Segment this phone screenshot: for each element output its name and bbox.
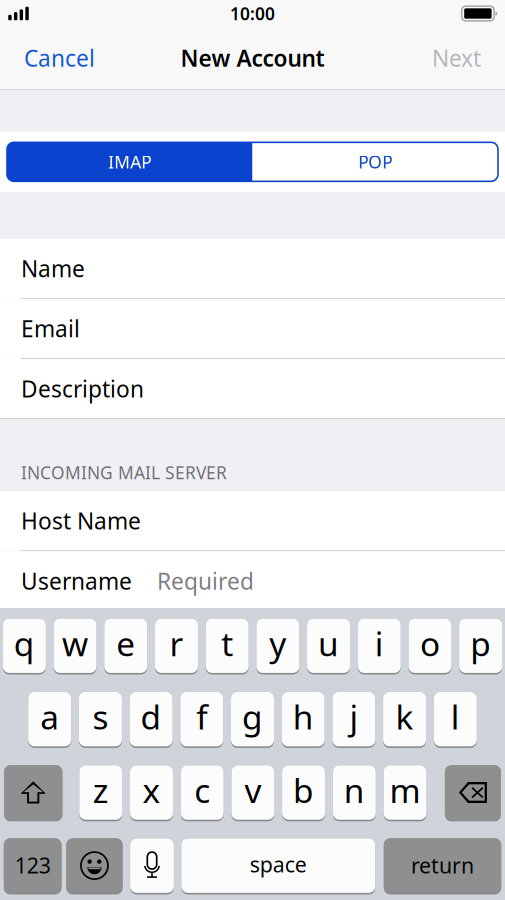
staticText: POP	[358, 150, 392, 173]
staticText: q	[14, 621, 35, 665]
staticText: 10:00	[230, 2, 275, 25]
staticText: k	[396, 694, 414, 739]
staticText: h	[293, 694, 314, 739]
staticText: e	[116, 621, 135, 665]
staticText: New Account	[180, 43, 324, 73]
button[interactable]: Username	[0, 551, 505, 610]
staticText: Cancel	[24, 43, 95, 73]
button[interactable]: y	[256, 617, 299, 674]
button[interactable]: u	[307, 617, 350, 674]
staticText: t	[221, 621, 233, 665]
staticText: z	[93, 768, 109, 812]
button[interactable]: m	[383, 764, 426, 821]
button[interactable]: Email	[0, 299, 505, 358]
button[interactable]: q	[3, 617, 46, 674]
staticText: 123	[15, 851, 51, 879]
staticText: INCOMING MAIL SERVER	[21, 461, 227, 484]
staticText: u	[318, 621, 339, 665]
button[interactable]: i	[358, 617, 401, 674]
staticText: return	[411, 851, 474, 879]
button[interactable]: t	[206, 617, 249, 674]
button[interactable]: w	[53, 617, 96, 674]
staticText: m	[389, 768, 420, 812]
button[interactable]: g	[231, 690, 274, 748]
staticText: n	[344, 768, 365, 812]
staticText: y	[269, 621, 286, 665]
staticText: Email	[21, 313, 80, 344]
button[interactable]: space	[181, 837, 375, 894]
button[interactable]: Shift	[4, 764, 62, 821]
staticText: i	[375, 621, 384, 665]
button[interactable]: j	[332, 690, 375, 748]
button[interactable]: IMAP	[7, 142, 252, 181]
staticText: space	[250, 850, 307, 878]
staticText: g	[242, 694, 263, 739]
button[interactable]: k	[383, 690, 426, 748]
staticText: f	[196, 694, 207, 739]
button[interactable]: h	[282, 690, 325, 748]
button[interactable]: z	[79, 764, 122, 821]
button[interactable]: b	[282, 764, 325, 821]
staticText: IMAP	[108, 150, 151, 173]
button[interactable]: v	[231, 764, 274, 821]
staticText: d	[141, 694, 162, 739]
staticText: Name	[21, 253, 85, 283]
staticText: p	[470, 621, 491, 665]
button[interactable]: e	[104, 617, 147, 674]
staticText: Username	[21, 566, 132, 596]
button[interactable]: p	[459, 617, 502, 674]
staticText: c	[194, 768, 210, 812]
button[interactable]: Cancel	[18, 35, 101, 81]
button[interactable]: POP	[252, 142, 498, 181]
staticText: r	[169, 621, 183, 665]
button[interactable]: Next	[426, 35, 487, 81]
button[interactable]: Dictation	[130, 837, 174, 894]
button[interactable]: c	[181, 764, 224, 821]
staticText: o	[420, 621, 440, 665]
staticText: Description	[21, 374, 144, 404]
button[interactable]: Host Name	[0, 491, 505, 550]
button[interactable]: x	[130, 764, 173, 821]
staticText: x	[142, 768, 160, 812]
button[interactable]: Emoji	[66, 837, 123, 894]
button[interactable]: d	[130, 690, 173, 748]
button[interactable]: Description	[0, 359, 505, 418]
staticText: s	[92, 694, 108, 739]
button[interactable]: a	[28, 690, 71, 748]
staticText: b	[293, 768, 314, 812]
button[interactable]: r	[155, 617, 198, 674]
button[interactable]: n	[333, 764, 376, 821]
staticText: Next	[432, 43, 481, 73]
button[interactable]: Name	[0, 239, 505, 298]
button[interactable]: l	[434, 690, 477, 748]
button[interactable]: f	[180, 690, 223, 748]
staticText: w	[62, 621, 88, 665]
button[interactable]: s	[79, 690, 122, 748]
button[interactable]: 123	[4, 837, 61, 894]
staticText: l	[451, 694, 460, 739]
button[interactable]: return	[384, 837, 501, 894]
staticText: a	[40, 694, 59, 739]
staticText: Host Name	[21, 506, 141, 536]
button[interactable]: o	[408, 617, 451, 674]
staticText: v	[244, 768, 261, 812]
staticText: j	[349, 694, 358, 739]
button[interactable]: Delete	[445, 764, 501, 821]
staticText: Required	[157, 566, 254, 596]
